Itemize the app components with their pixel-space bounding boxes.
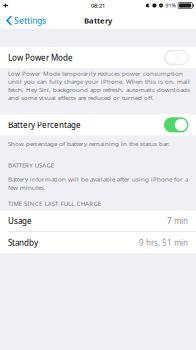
staticText: 91% bbox=[165, 2, 175, 9]
button[interactable]: Low Power Mode bbox=[0, 47, 196, 68]
staticText: 9 hrs, 51 min bbox=[139, 237, 188, 248]
staticText: Low Power Mode temporarily reduces power… bbox=[8, 69, 190, 102]
staticText: Low Power Mode bbox=[8, 52, 73, 63]
staticText: Show percentage of battery remaining in … bbox=[8, 139, 170, 148]
staticText: Battery Percentage bbox=[8, 120, 81, 130]
staticText: TIME SINCE LAST FULL CHARGE bbox=[8, 199, 101, 207]
staticText: Standby bbox=[8, 237, 38, 248]
staticText: Battery bbox=[84, 15, 112, 26]
button[interactable]: Battery Percentage bbox=[0, 114, 196, 135]
staticText: Settings bbox=[14, 15, 46, 26]
staticText: BATTERY USAGE bbox=[8, 161, 54, 169]
staticText: Battery information will be available af… bbox=[8, 175, 188, 191]
staticText: Usage bbox=[8, 216, 32, 226]
button[interactable]: Settings bbox=[0, 11, 51, 30]
staticText: 7 min bbox=[167, 216, 188, 226]
staticText: 08:21 bbox=[91, 2, 105, 9]
